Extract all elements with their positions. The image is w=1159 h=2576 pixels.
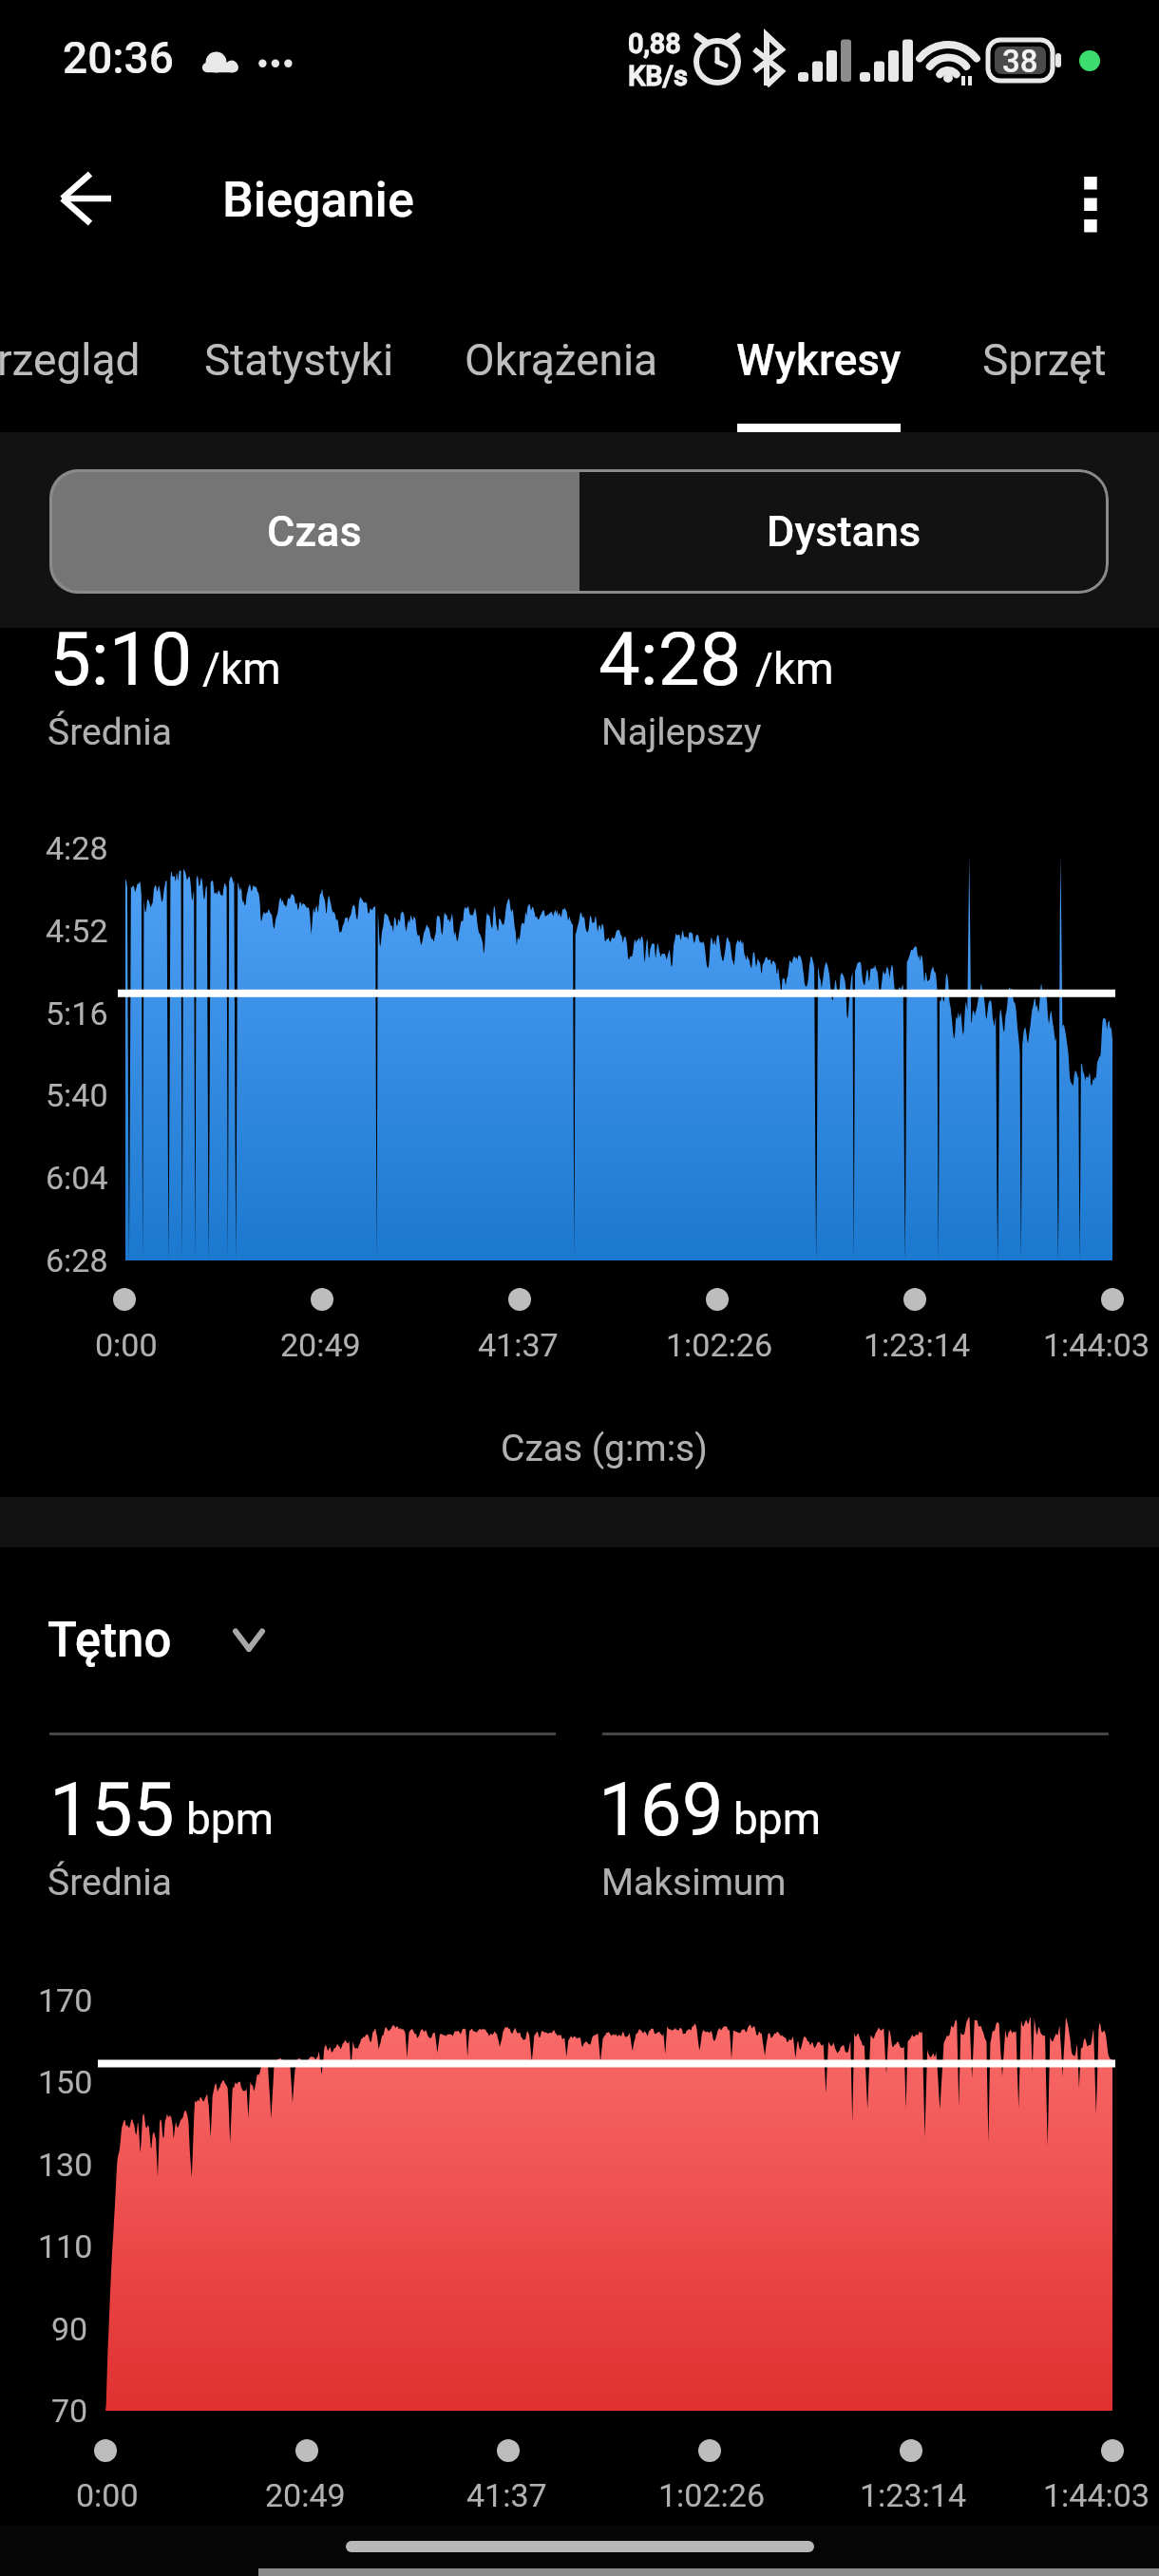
- staticText: 20:49: [280, 1326, 361, 1364]
- staticText: Bieganie: [222, 171, 414, 229]
- button[interactable]: Dystans: [579, 469, 1109, 594]
- staticText: Wykresy: [736, 334, 902, 386]
- staticText: 150: [38, 2063, 93, 2101]
- staticText: 130: [38, 2146, 93, 2184]
- staticText: Najlepszy: [601, 710, 762, 754]
- staticText: 0:00: [95, 1326, 158, 1364]
- staticText: Średnia: [47, 1861, 172, 1904]
- staticText: 169: [598, 1767, 724, 1853]
- staticText: 20:36: [63, 32, 174, 84]
- staticText: 38: [1002, 43, 1038, 80]
- staticText: Sprzęt: [982, 334, 1107, 386]
- button[interactable]: [0, 285, 169, 432]
- staticText: Średnia: [47, 710, 172, 754]
- staticText: 1:23:14: [860, 2476, 967, 2514]
- staticText: Dystans: [767, 506, 921, 557]
- button[interactable]: [431, 285, 695, 432]
- staticText: /km: [755, 643, 834, 694]
- staticText: 4:52: [46, 912, 108, 950]
- staticText: /km: [202, 643, 281, 694]
- staticText: 90: [51, 2310, 88, 2348]
- button[interactable]: [169, 285, 431, 432]
- staticText: Maksimum: [601, 1861, 787, 1904]
- staticText: 1:23:14: [864, 1326, 971, 1364]
- staticText: 6:04: [46, 1159, 108, 1197]
- button[interactable]: Tętno, expand: [38, 1586, 313, 1693]
- staticText: 5:40: [46, 1076, 108, 1114]
- button[interactable]: Czas: [49, 469, 579, 594]
- staticText: 20:49: [265, 2476, 346, 2514]
- staticText: KB/s: [628, 60, 689, 92]
- staticText: 170: [38, 1981, 93, 2019]
- staticText: 155: [49, 1767, 175, 1853]
- staticText: 1:44:03: [1043, 2476, 1150, 2514]
- staticText: 41:37: [478, 1326, 559, 1364]
- staticText: 6:28: [46, 1241, 108, 1279]
- staticText: 4:28: [46, 829, 108, 867]
- staticText: 70: [51, 2392, 88, 2430]
- button[interactable]: [695, 285, 939, 432]
- staticText: 1:02:26: [666, 1326, 773, 1364]
- button[interactable]: More options: [1045, 147, 1149, 252]
- staticText: Statystyki: [204, 334, 394, 386]
- staticText: 0,88: [628, 28, 681, 60]
- staticText: 1:44:03: [1043, 1326, 1150, 1364]
- staticText: Czas (g:m:s): [501, 1427, 708, 1470]
- staticText: Okrążenia: [465, 334, 658, 386]
- staticText: 1:02:26: [658, 2476, 766, 2514]
- staticText: 4:28: [598, 616, 742, 703]
- staticText: Tętno: [47, 1612, 172, 1669]
- staticText: 41:37: [466, 2476, 547, 2514]
- staticText: 0:00: [76, 2476, 139, 2514]
- staticText: bpm: [733, 1793, 821, 1845]
- staticText: 110: [38, 2227, 93, 2265]
- staticText: Czas: [267, 506, 362, 557]
- staticText: 5:10: [49, 616, 193, 703]
- staticText: 5:16: [46, 994, 108, 1032]
- staticText: bpm: [186, 1793, 274, 1845]
- button[interactable]: [939, 285, 1159, 432]
- staticText: rzegląd: [0, 334, 141, 386]
- button[interactable]: Back: [36, 148, 141, 253]
